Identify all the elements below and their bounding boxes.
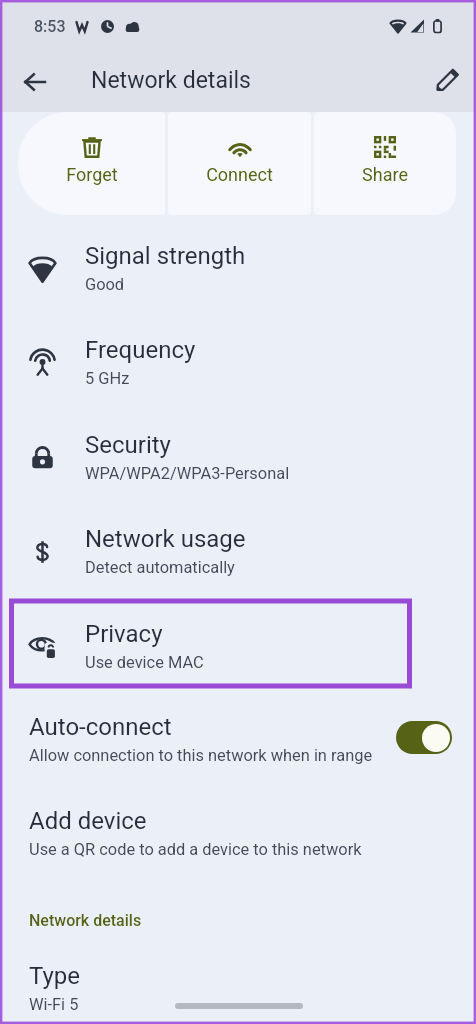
staticText: Detect automatically bbox=[85, 558, 235, 577]
button[interactable]: Type bbox=[0, 955, 476, 1023]
button[interactable]: Auto-connect bbox=[0, 706, 476, 776]
staticText: Privacy bbox=[85, 620, 163, 648]
staticText: Add device bbox=[29, 807, 147, 835]
button[interactable]: Back bbox=[12, 60, 56, 104]
staticText: Auto-connect bbox=[29, 713, 172, 741]
staticText: Type bbox=[29, 962, 81, 990]
staticText: Forget bbox=[66, 164, 118, 185]
staticText: Frequency bbox=[85, 336, 196, 364]
button[interactable]: Auto-connect toggle bbox=[396, 721, 452, 754]
staticText: Network details bbox=[91, 67, 251, 94]
button[interactable]: Forget bbox=[18, 112, 165, 215]
staticText: Connect bbox=[206, 164, 273, 185]
staticText: Allow connection to this network when in… bbox=[29, 746, 373, 765]
staticText: Use a QR code to add a device to this ne… bbox=[29, 840, 362, 859]
button[interactable]: Security bbox=[0, 419, 476, 513]
staticText: Signal strength bbox=[85, 242, 246, 270]
staticText: Good bbox=[85, 275, 125, 294]
staticText: Network details bbox=[29, 911, 142, 930]
button[interactable]: Connect bbox=[168, 112, 311, 215]
staticText: Security bbox=[85, 431, 171, 459]
staticText: 5 GHz bbox=[85, 369, 130, 388]
button[interactable]: Privacy bbox=[0, 608, 476, 702]
staticText: Wi-Fi 5 bbox=[29, 995, 79, 1014]
staticText: Share bbox=[362, 164, 408, 185]
button[interactable]: Network usage bbox=[0, 513, 476, 607]
staticText: Use device MAC bbox=[85, 653, 204, 672]
button[interactable]: Share bbox=[314, 112, 456, 215]
button[interactable]: Add device bbox=[0, 800, 476, 868]
button[interactable]: Frequency bbox=[0, 324, 476, 418]
button[interactable]: Signal strength bbox=[0, 230, 476, 324]
staticText: 8:53 bbox=[34, 17, 66, 36]
staticText: Network usage bbox=[85, 525, 246, 553]
staticText: WPA/WPA2/WPA3-Personal bbox=[85, 464, 290, 483]
button[interactable]: Edit bbox=[426, 57, 470, 101]
